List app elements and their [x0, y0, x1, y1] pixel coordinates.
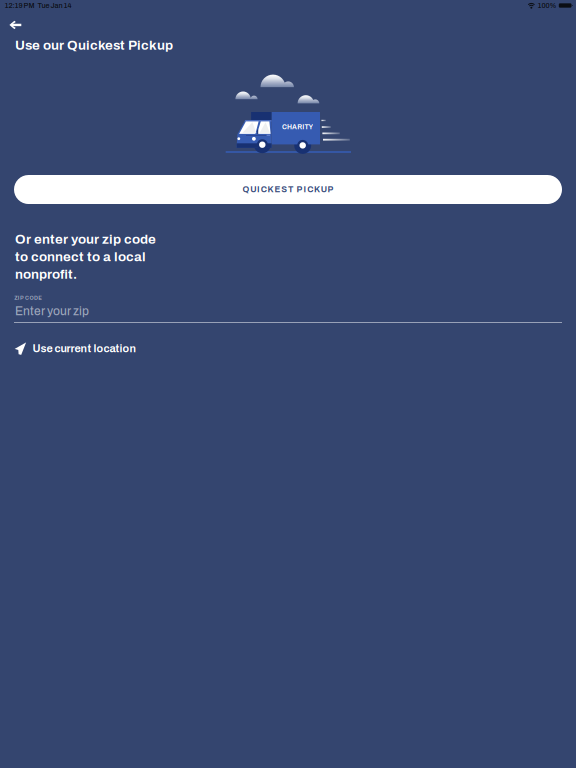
staticText: Or enter your zip code	[15, 232, 156, 246]
staticText: 100%	[537, 2, 556, 9]
button[interactable]: Back	[0, 14, 39, 36]
staticText: QUICKEST PICKUP	[242, 185, 334, 194]
staticText: 12:19 PM	[4, 2, 34, 9]
staticText: nonprofit.	[15, 267, 77, 281]
staticText: Use current location	[32, 343, 136, 355]
staticText: CHARITY	[282, 123, 313, 131]
staticText: ZIP CODE	[14, 295, 42, 301]
staticText: to connect to a local	[15, 249, 146, 264]
staticText: Use our Quickest Pickup	[15, 38, 173, 52]
button[interactable]: QUICKEST PICKUP	[14, 175, 562, 204]
staticText: Tue Jan 14	[34, 2, 71, 9]
button[interactable]: Use current location	[0, 336, 150, 361]
staticText: Enter your zip	[15, 305, 89, 318]
